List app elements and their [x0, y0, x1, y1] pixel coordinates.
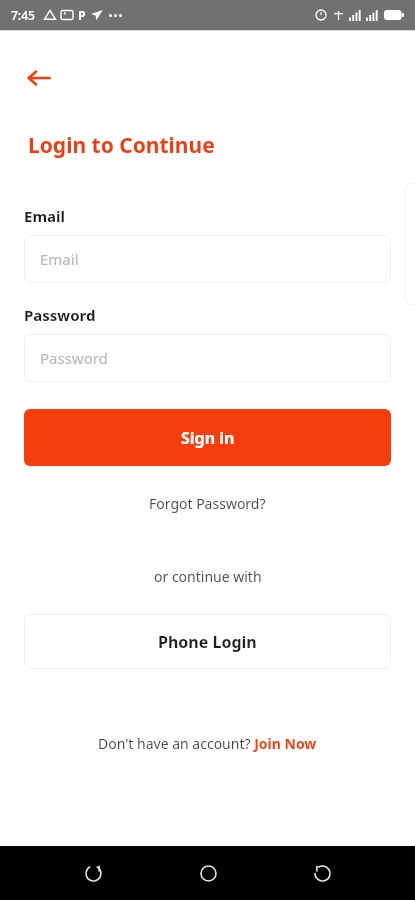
button[interactable]: Forgot Password? — [0, 490, 415, 517]
staticText: Password — [40, 348, 108, 368]
staticText: Phone Login — [158, 631, 257, 653]
button[interactable]: Email — [24, 235, 391, 283]
button[interactable]: Recents — [71, 851, 115, 895]
staticText: Sign in — [181, 427, 235, 449]
button[interactable]: Back — [22, 61, 56, 95]
staticText: Email — [40, 249, 79, 269]
staticText: Forgot Password? — [149, 494, 266, 513]
staticText: P — [78, 7, 86, 23]
button[interactable]: Phone Login — [24, 614, 391, 669]
staticText: Don't have an account? Join Now — [98, 734, 317, 753]
button[interactable]: Password — [24, 334, 391, 382]
button[interactable]: Sign in — [24, 409, 391, 466]
button[interactable]: Back — [300, 851, 344, 895]
button[interactable]: Don't have an account? Join Now — [0, 731, 415, 756]
staticText: 7:45 — [11, 7, 35, 23]
staticText: or continue with — [154, 567, 262, 586]
staticText: Password — [24, 305, 96, 325]
button[interactable]: Home — [186, 851, 230, 895]
staticText: Email — [24, 206, 65, 226]
staticText: Login to Continue — [28, 131, 215, 160]
